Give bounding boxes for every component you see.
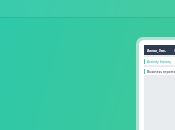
- button[interactable]: Business reports: [144, 67, 175, 75]
- button[interactable]: Activity history: [144, 57, 175, 65]
- staticText: Business reports: [147, 69, 175, 74]
- staticText: Home: [174, 48, 175, 53]
- button[interactable]: Home: [173, 48, 175, 53]
- button[interactable]: Acme, Inc.: [146, 48, 168, 53]
- staticText: Activity history: [147, 59, 172, 64]
- button[interactable]: Acme, Inc.: [144, 45, 175, 130]
- staticText: Acme, Inc.: [147, 48, 167, 53]
